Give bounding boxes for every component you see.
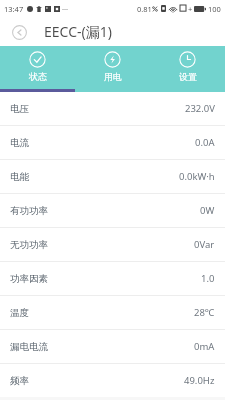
staticText: ··· bbox=[62, 4, 69, 14]
staticText: 设置 bbox=[179, 71, 197, 82]
staticText: 49.0Hz bbox=[184, 374, 215, 387]
button[interactable]: 状态 bbox=[0, 46, 75, 92]
staticText: 0.0A bbox=[195, 136, 215, 149]
staticText: 电能 bbox=[10, 171, 29, 183]
staticText: 电流 bbox=[10, 137, 29, 149]
staticText: 0.81 bbox=[137, 4, 152, 14]
staticText: 0mA bbox=[194, 340, 215, 353]
button[interactable]: 设置 bbox=[150, 46, 225, 92]
staticText: 温度 bbox=[10, 307, 29, 319]
button[interactable]: Back bbox=[7, 20, 31, 44]
staticText: + bbox=[188, 4, 193, 14]
button[interactable]: 功率因素 bbox=[0, 262, 225, 296]
button[interactable]: 有功功率 bbox=[0, 194, 225, 228]
staticText: 0Var bbox=[194, 238, 215, 251]
button[interactable]: 电能 bbox=[0, 160, 225, 194]
staticText: 1.0 bbox=[201, 272, 215, 285]
staticText: 功率因素 bbox=[10, 273, 48, 285]
button[interactable]: 电流 bbox=[0, 126, 225, 160]
staticText: 状态 bbox=[29, 71, 47, 82]
button[interactable]: 温度 bbox=[0, 296, 225, 330]
staticText: 0.0kW·h bbox=[179, 170, 215, 183]
staticText: 有功功率 bbox=[10, 205, 48, 217]
button[interactable]: 用电 bbox=[75, 46, 150, 92]
button[interactable]: 电压 bbox=[0, 92, 225, 126]
staticText: 电压 bbox=[10, 103, 29, 115]
staticText: 频率 bbox=[10, 375, 29, 387]
staticText: 0W bbox=[200, 204, 215, 217]
staticText: 100 bbox=[208, 4, 221, 14]
button[interactable]: 频率 bbox=[0, 364, 225, 397]
staticText: EECC-(漏1) bbox=[44, 22, 112, 41]
button[interactable]: 无功功率 bbox=[0, 228, 225, 262]
staticText: 无功功率 bbox=[10, 239, 48, 251]
staticText: 232.0V bbox=[185, 102, 215, 115]
staticText: 13:47 bbox=[4, 4, 24, 14]
staticText: 漏电电流 bbox=[10, 341, 48, 353]
staticText: 用电 bbox=[104, 71, 122, 82]
staticText: 28℃ bbox=[194, 306, 215, 319]
button[interactable]: 漏电电流 bbox=[0, 330, 225, 364]
